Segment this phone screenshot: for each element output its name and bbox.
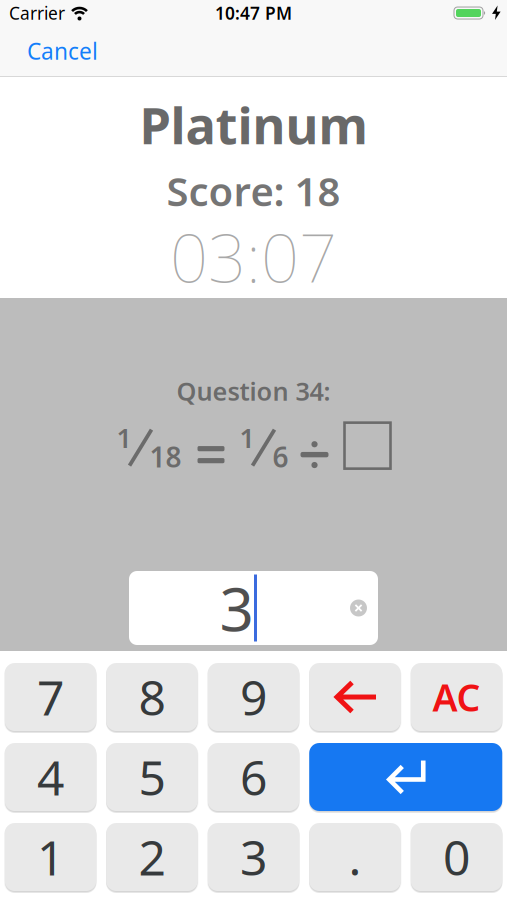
staticText: Carrier [9, 1, 65, 24]
staticText: 6 [240, 745, 267, 809]
staticText: 1 [239, 420, 254, 455]
staticText: . [348, 825, 361, 889]
staticText: Cancel [27, 36, 98, 66]
staticText: 18 [149, 438, 181, 475]
staticText: 8 [138, 665, 165, 729]
button[interactable]: . [309, 823, 401, 891]
staticText: Score: 18 [166, 164, 340, 217]
button[interactable]: Enter [309, 743, 502, 811]
staticText: 0 [443, 825, 470, 889]
staticText: 1 [116, 420, 131, 455]
button[interactable]: Clear text [350, 599, 367, 616]
button[interactable]: 8 [106, 663, 198, 731]
staticText: 03:07 [170, 212, 337, 301]
button[interactable]: 7 [5, 663, 96, 731]
staticText: AC [432, 672, 480, 722]
button[interactable]: AC [411, 663, 502, 731]
button[interactable]: 3 [208, 823, 299, 891]
staticText: 3 [219, 568, 253, 648]
staticText: 4 [37, 745, 64, 809]
staticText: Platinum [139, 91, 367, 158]
button[interactable]: 4 [5, 743, 96, 811]
button[interactable]: 2 [106, 823, 198, 891]
staticText: 3 [240, 825, 267, 889]
staticText: 5 [138, 745, 165, 809]
staticText: 6 [272, 438, 288, 475]
button[interactable]: Cancel [27, 36, 98, 66]
button[interactable]: 5 [106, 743, 198, 811]
staticText: 1 [37, 825, 64, 889]
button[interactable]: 1 [5, 823, 96, 891]
button[interactable]: 6 [208, 743, 299, 811]
button[interactable]: 9 [208, 663, 299, 731]
staticText: 7 [37, 665, 64, 729]
staticText: 2 [138, 825, 165, 889]
button[interactable]: Delete [309, 663, 401, 731]
staticText: Question 34: [176, 374, 330, 408]
staticText: 10:47 PM [215, 1, 292, 24]
staticText: 9 [240, 665, 267, 729]
button[interactable]: 0 [411, 823, 502, 891]
